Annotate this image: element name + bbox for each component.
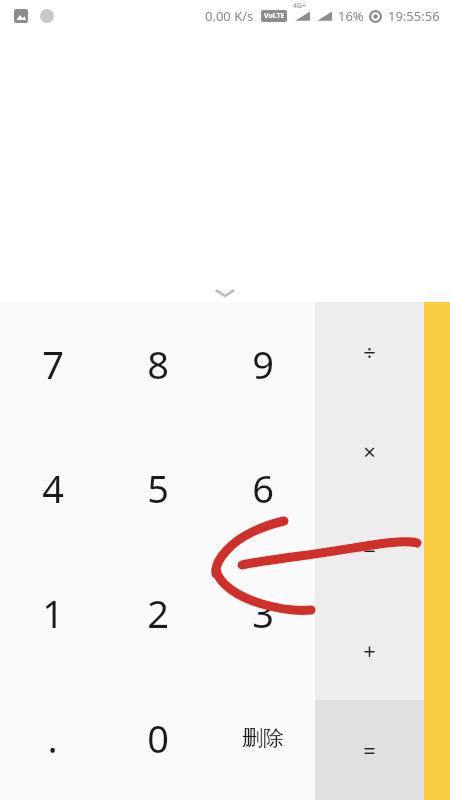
staticText: 9 (252, 338, 274, 390)
staticText: = (363, 735, 376, 765)
button[interactable]: 1 (0, 550, 105, 675)
staticText: − (363, 535, 376, 565)
button[interactable]: 2 (105, 550, 210, 675)
button[interactable]: 7 (0, 302, 105, 426)
staticText: 2 (147, 587, 169, 639)
staticText: . (47, 712, 58, 764)
staticText: 16% (338, 7, 364, 25)
button[interactable]: 0 (105, 675, 210, 800)
button[interactable]: × (315, 401, 424, 500)
staticText: 4G+ (293, 1, 307, 11)
button[interactable]: 8 (105, 302, 210, 426)
button[interactable]: . (0, 675, 105, 800)
staticText: ÷ (363, 337, 376, 367)
button[interactable]: − (315, 500, 424, 600)
staticText: 3 (252, 587, 274, 639)
button[interactable]: 6 (210, 426, 315, 550)
staticText: 0.00 K/s (205, 7, 254, 25)
button[interactable]: Collapse keypad (0, 283, 450, 302)
staticText: VoLTE (264, 11, 285, 21)
staticText: 5 (147, 462, 169, 514)
button[interactable]: 3 (210, 550, 315, 675)
staticText: 8 (147, 338, 169, 390)
button[interactable]: = (315, 700, 424, 800)
staticText: 4 (42, 462, 64, 514)
button[interactable]: 5 (105, 426, 210, 550)
button[interactable]: 4 (0, 426, 105, 550)
button[interactable]: 删除 (210, 675, 315, 800)
staticText: 1 (42, 587, 64, 639)
staticText: 19:55:56 (388, 7, 440, 25)
staticText: 0 (147, 712, 169, 764)
staticText: 7 (42, 338, 64, 390)
staticText: 6 (252, 462, 274, 514)
staticText: 删除 (242, 725, 284, 751)
button[interactable]: ÷ (315, 302, 424, 401)
button[interactable]: 9 (210, 302, 315, 426)
staticText: + (363, 635, 376, 665)
staticText: × (363, 436, 376, 466)
button[interactable]: + (315, 600, 424, 700)
